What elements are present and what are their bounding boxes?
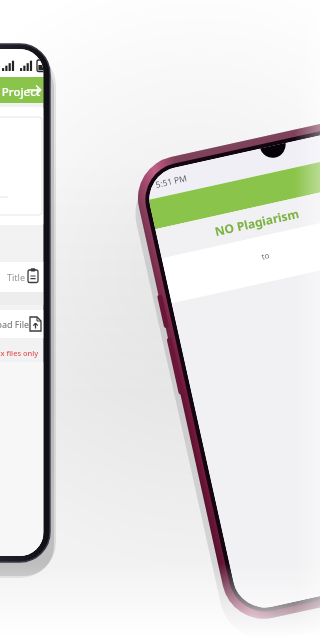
- button[interactable]: Two phone mockups showing project upload…: [0, 0, 320, 640]
